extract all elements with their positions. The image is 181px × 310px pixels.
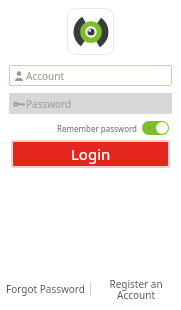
button[interactable]: Forgot Password: [0, 268, 90, 310]
button[interactable]: Register an Account: [91, 268, 181, 310]
staticText: Remember password: [57, 123, 138, 134]
button[interactable]: Remember password: [55, 119, 171, 137]
button[interactable]: Account: [9, 65, 172, 86]
button[interactable]: Login: [13, 142, 168, 166]
staticText: Password: [26, 97, 72, 111]
button[interactable]: Remember password toggle, on: [142, 121, 169, 135]
staticText: Account: [26, 69, 65, 83]
staticText: Login: [71, 144, 111, 164]
button[interactable]: Password: [9, 93, 172, 114]
other: App logo: [67, 8, 114, 55]
staticText: Forgot Password: [6, 282, 85, 296]
staticText: Register an Account: [109, 277, 163, 302]
